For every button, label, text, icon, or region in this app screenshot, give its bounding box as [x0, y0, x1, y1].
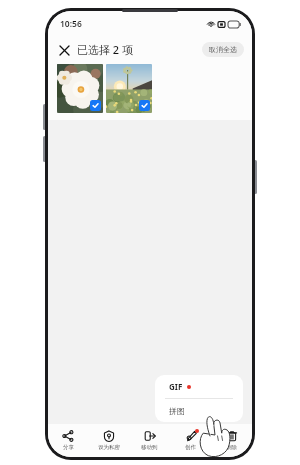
staticText: 10:56 [60, 18, 82, 30]
staticText: 已选择 2 项 [77, 42, 134, 57]
staticText: 删除 [226, 444, 237, 451]
button[interactable]: 创作 [170, 424, 211, 457]
staticText: 拼图 [169, 406, 185, 416]
button[interactable]: 移动到 [129, 424, 170, 457]
staticText: 分享 [63, 444, 74, 451]
button[interactable]: 拼图 [155, 399, 243, 422]
button[interactable]: 分享 [48, 424, 88, 457]
staticText: 创作 [185, 444, 196, 451]
staticText: 设为私密 [98, 444, 120, 451]
button[interactable]: Close selection [55, 41, 73, 59]
button[interactable]: 取消全选 [202, 42, 244, 57]
button[interactable]: GIF [155, 375, 243, 398]
staticText: 移动到 [141, 444, 158, 451]
staticText: 取消全选 [209, 45, 237, 54]
button[interactable]: 删除 [211, 424, 252, 457]
button[interactable]: Photo 2, selected [106, 64, 152, 113]
button[interactable]: 设为私密 [88, 424, 129, 457]
staticText: GIF [169, 381, 183, 392]
button[interactable]: Photo 1, selected [57, 64, 103, 113]
